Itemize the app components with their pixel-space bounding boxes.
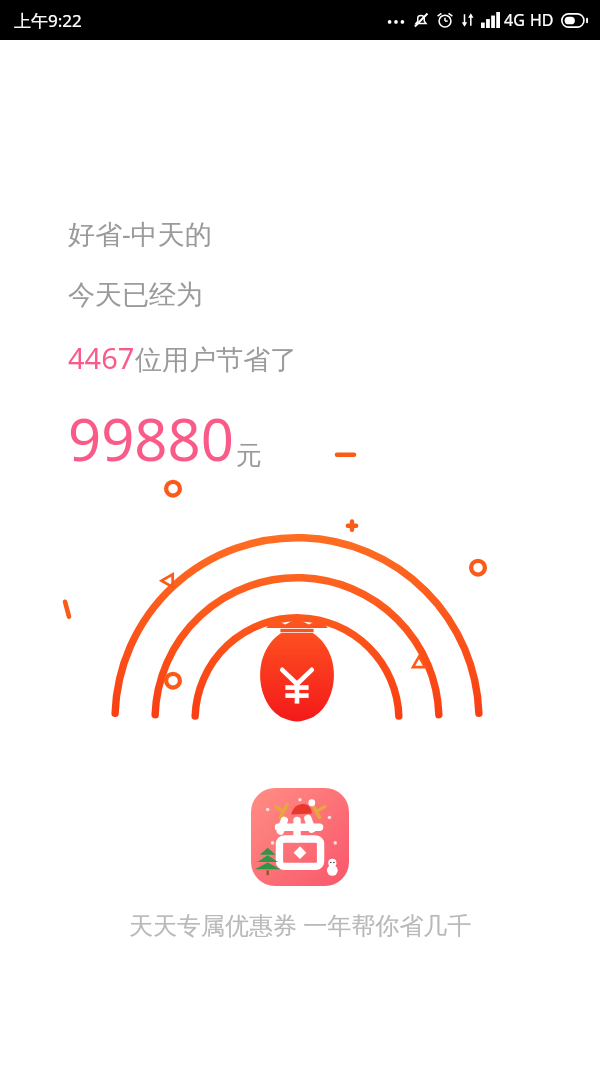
staticText: 4467 [68, 338, 135, 377]
staticText: 上午9:22 [14, 9, 82, 32]
staticText: HD [530, 9, 554, 31]
staticText: 今天已经为 [68, 278, 203, 312]
staticText: 天天专属优惠券 一年帮你省几千 [129, 908, 472, 941]
staticText: 位用户节省了 [135, 343, 297, 377]
staticText: 元 [236, 439, 262, 472]
staticText: 99880 [68, 399, 234, 478]
button[interactable]: 好省 app icon [251, 788, 349, 886]
staticText: 好省-中天的 [68, 215, 212, 252]
staticText: 4G [504, 9, 525, 31]
